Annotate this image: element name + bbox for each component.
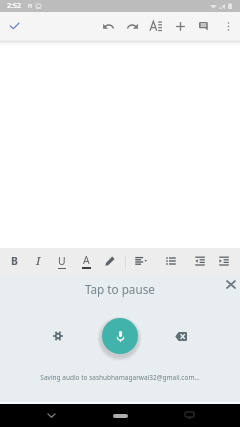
staticText: A: [83, 253, 90, 267]
button[interactable]: Insert: [168, 12, 192, 40]
button[interactable]: Undo: [96, 12, 120, 40]
button[interactable]: Italic: [26, 249, 50, 273]
staticText: I: [36, 253, 41, 269]
button[interactable]: Redo: [120, 12, 144, 40]
button[interactable]: Align: [129, 249, 153, 273]
staticText: B: [11, 254, 18, 268]
button[interactable]: Highlight: [98, 249, 122, 273]
button[interactable]: Settings: [43, 321, 73, 351]
button[interactable]: More options: [216, 12, 240, 40]
button[interactable]: Underline: [50, 249, 74, 273]
button[interactable]: Bold: [2, 249, 26, 273]
staticText: U: [58, 254, 66, 268]
button[interactable]: Formatting: [144, 12, 168, 40]
button[interactable]: Text colour: [74, 249, 98, 273]
staticText: 2:52: [7, 1, 21, 11]
staticText: Saving audio to sashubhamagarwal32@gmail…: [40, 373, 200, 382]
button[interactable]: Bulleted list: [159, 249, 183, 273]
button[interactable]: Pause recording: [102, 318, 138, 354]
button[interactable]: Close: [222, 276, 240, 292]
button[interactable]: Comment: [192, 12, 216, 40]
button[interactable]: Home: [108, 404, 132, 427]
staticText: Tap to pause: [85, 281, 155, 297]
button[interactable]: Switch keyboard: [177, 404, 201, 427]
button[interactable]: Delete: [166, 321, 196, 351]
button[interactable]: Decrease indent: [188, 249, 212, 273]
button[interactable]: Back: [39, 404, 63, 427]
button[interactable]: Done: [0, 12, 28, 40]
button[interactable]: Increase indent: [212, 249, 236, 273]
